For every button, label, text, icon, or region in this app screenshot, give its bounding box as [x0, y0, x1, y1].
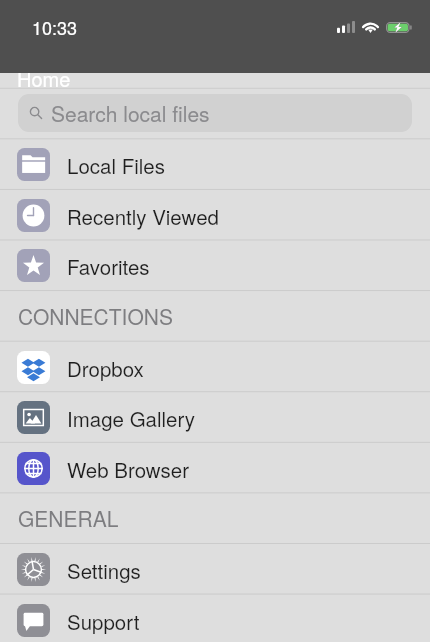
staticText: Favorites: [67, 251, 150, 280]
button[interactable]: Favorites: [0, 240, 430, 290]
staticText: Support: [67, 606, 140, 635]
button[interactable]: Settings: [0, 544, 430, 594]
button[interactable]: Local Files: [0, 139, 430, 189]
button[interactable]: Dropbox: [0, 342, 430, 392]
staticText: GENERAL: [18, 503, 119, 533]
staticText: 10:33: [32, 14, 78, 39]
staticText: Dropbox: [67, 353, 144, 382]
button[interactable]: Image Gallery: [0, 392, 430, 442]
staticText: Web Browser: [67, 454, 189, 483]
staticText: Home: [17, 64, 71, 93]
staticText: Recently Viewed: [67, 201, 219, 230]
staticText: Settings: [67, 555, 141, 584]
button[interactable]: Recently Viewed: [0, 190, 430, 240]
button[interactable]: Search local files: [18, 94, 412, 132]
button[interactable]: Support: [0, 595, 430, 642]
staticText: Image Gallery: [67, 403, 196, 432]
staticText: Local Files: [67, 150, 165, 179]
button[interactable]: Web Browser: [0, 443, 430, 493]
staticText: CONNECTIONS: [18, 301, 173, 331]
staticText: Search local files: [51, 98, 210, 128]
